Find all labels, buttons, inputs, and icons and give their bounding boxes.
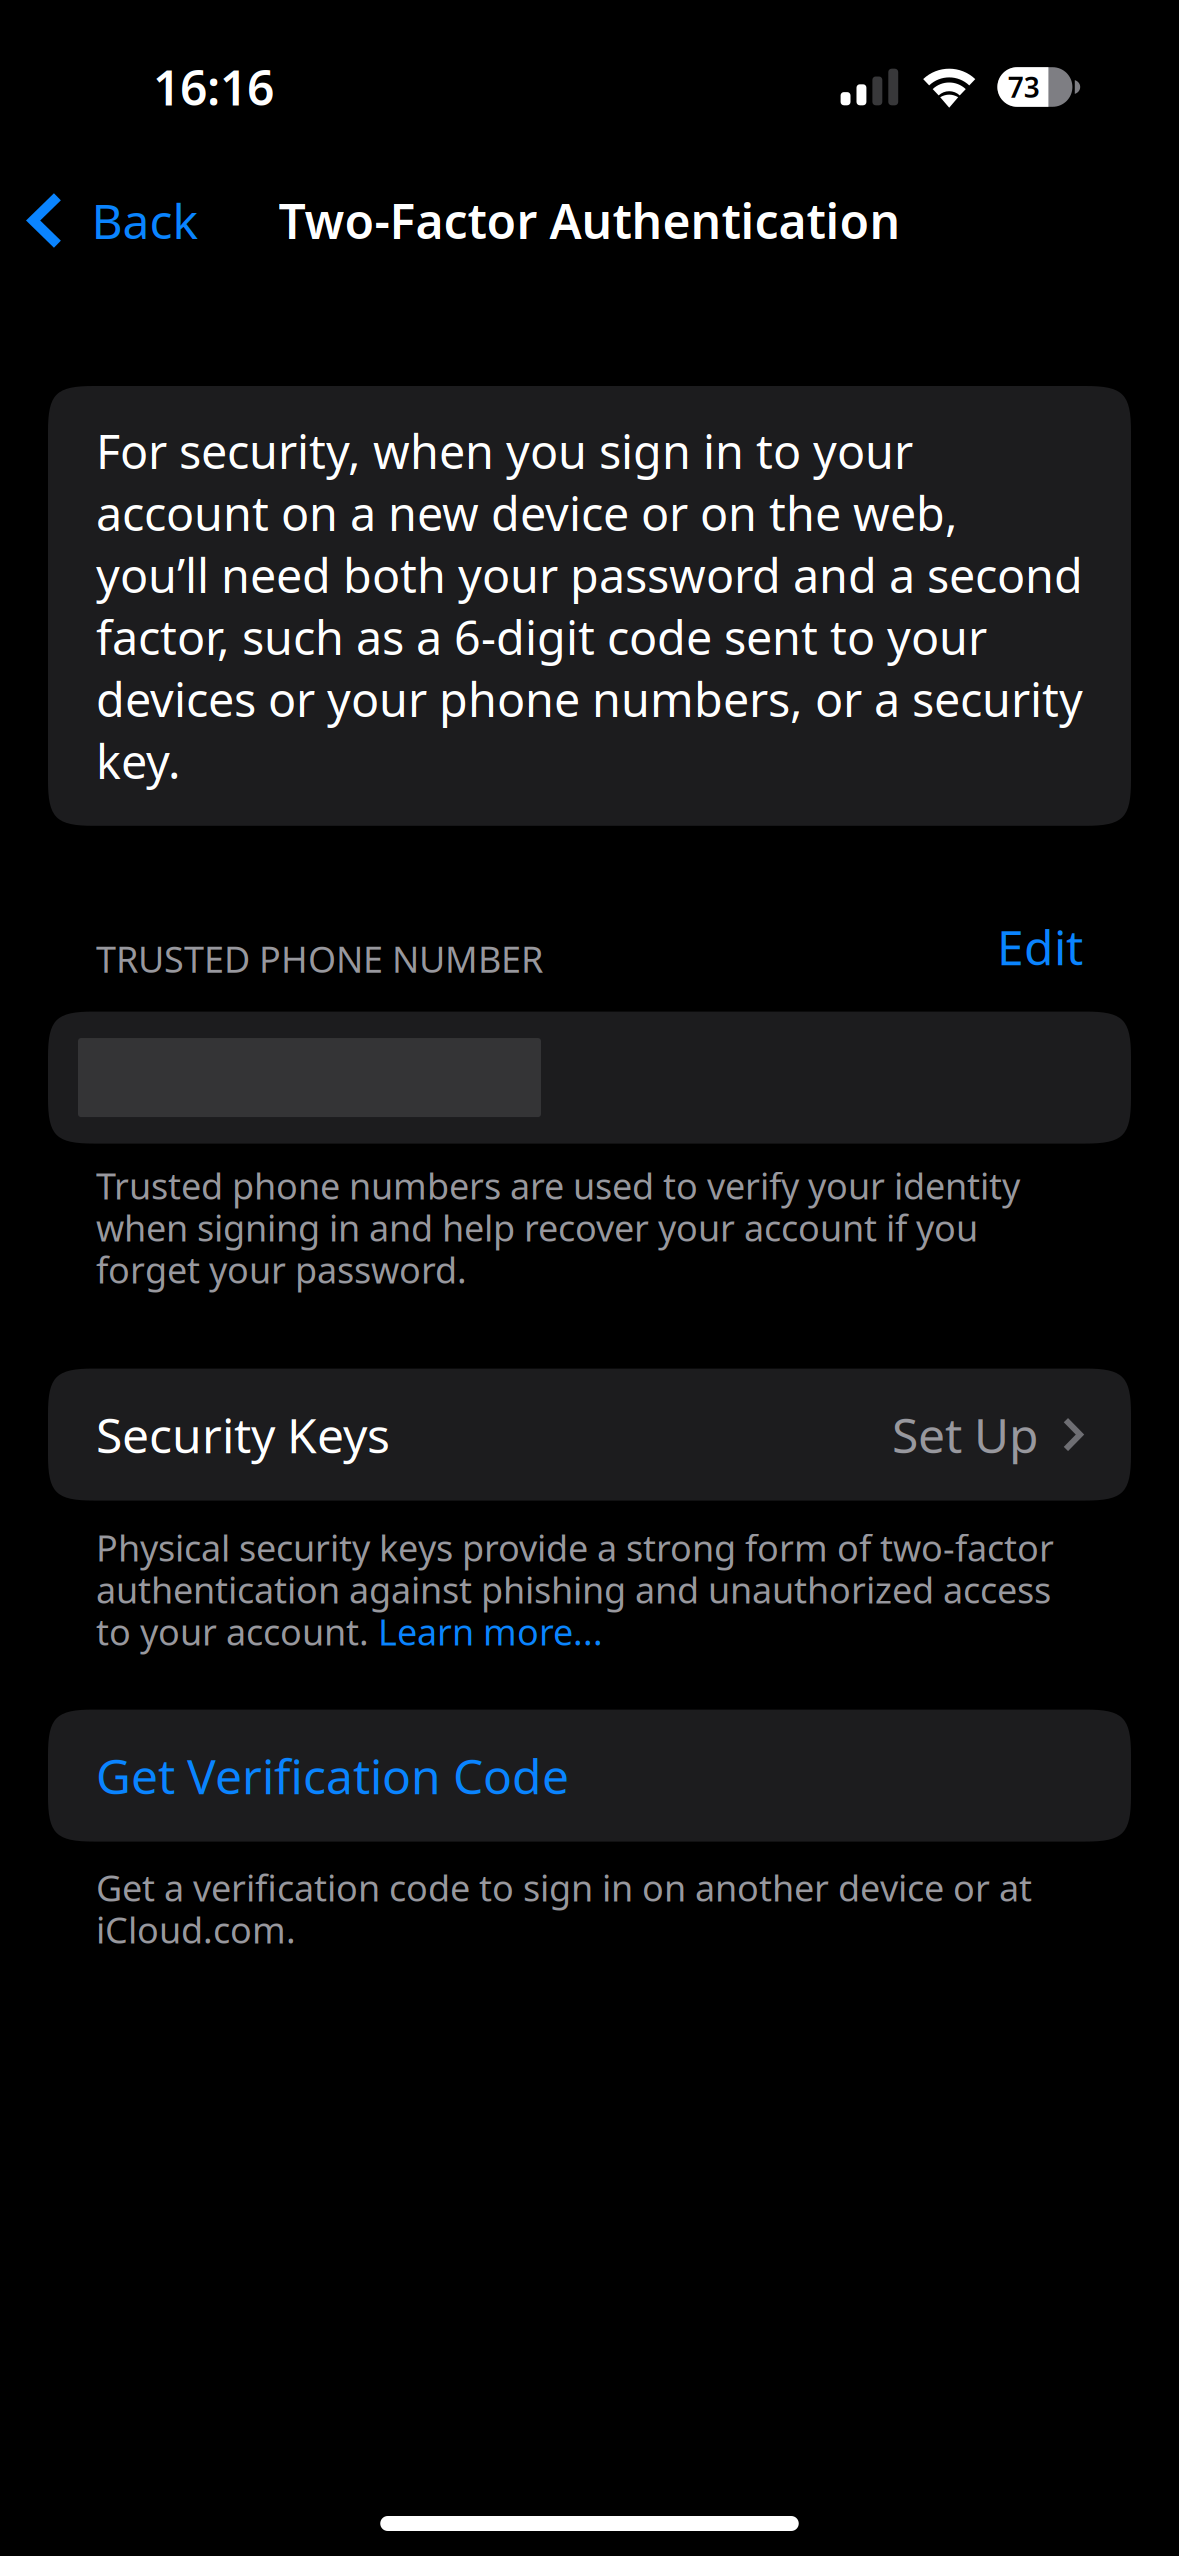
staticText: Back (91, 189, 198, 252)
staticText: Get Verification Code (96, 1744, 569, 1807)
button[interactable]: Back (0, 174, 214, 267)
staticText: 73 (1008, 68, 1040, 106)
staticText: Learn more... (378, 1608, 603, 1655)
staticText: Set Up (892, 1403, 1039, 1466)
staticText: Security Keys (96, 1403, 390, 1466)
staticText: authentication against phishing and unau… (96, 1566, 1051, 1613)
staticText: TRUSTED PHONE NUMBER (96, 935, 543, 983)
staticText: forget your password. (96, 1246, 467, 1293)
button[interactable]: Edit (957, 911, 1083, 982)
staticText: For security, when you sign in to your a… (96, 420, 1083, 792)
staticText: Two-Factor Authentication (278, 189, 900, 252)
button[interactable]: Security Keys (0, 1369, 1179, 1501)
staticText: iCloud.com. (96, 1906, 296, 1953)
staticText: when signing in and help recover your ac… (96, 1204, 978, 1251)
staticText: Get a verification code to sign in on an… (96, 1864, 1032, 1911)
staticText: Edit (997, 915, 1083, 978)
staticText: Physical security keys provide a strong … (96, 1524, 1054, 1571)
staticText: to your account. (96, 1608, 378, 1655)
staticText: 16:16 (153, 55, 274, 119)
button[interactable]: Get Verification Code (0, 1710, 1179, 1842)
staticText: Trusted phone numbers are used to verify… (96, 1162, 1020, 1209)
